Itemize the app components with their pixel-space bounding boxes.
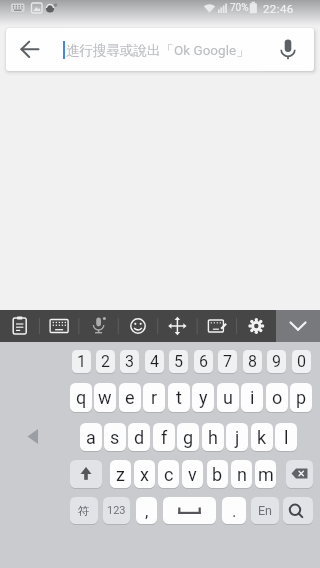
staticText: q <box>76 387 87 408</box>
staticText: 4 <box>150 352 159 371</box>
button[interactable]: r <box>143 383 165 412</box>
button[interactable] <box>283 497 313 524</box>
button[interactable]: y <box>192 383 214 412</box>
button[interactable] <box>79 310 118 342</box>
button[interactable] <box>10 30 50 68</box>
staticText: 0 <box>297 352 306 371</box>
staticText: u <box>223 387 233 408</box>
staticText: l <box>284 427 289 448</box>
staticText: i <box>250 387 255 408</box>
button[interactable]: 9 <box>267 350 286 373</box>
button[interactable]: 2 <box>96 350 115 373</box>
button[interactable] <box>158 310 197 342</box>
staticText: 5 <box>174 352 183 371</box>
staticText: c <box>164 464 174 485</box>
button[interactable]: 0 <box>292 350 311 373</box>
staticText: 2 <box>101 352 110 371</box>
staticText: w <box>98 387 112 408</box>
button[interactable]: s <box>104 423 126 451</box>
button[interactable]: 5 <box>169 350 188 373</box>
staticText: x <box>140 464 149 485</box>
button[interactable] <box>163 497 216 524</box>
staticText: 8 <box>248 352 257 371</box>
button[interactable] <box>276 310 320 342</box>
staticText: m <box>258 464 274 485</box>
button[interactable]: 7 <box>218 350 237 373</box>
staticText: e <box>125 387 135 408</box>
staticText: 123 <box>107 504 126 517</box>
button[interactable] <box>118 310 157 342</box>
button[interactable] <box>197 310 236 342</box>
staticText: n <box>237 464 247 485</box>
button[interactable]: o <box>266 383 288 412</box>
button[interactable] <box>70 460 102 488</box>
button[interactable]: 符 <box>70 497 98 524</box>
button[interactable]: k <box>251 423 273 451</box>
staticText: 符 <box>78 504 90 518</box>
staticText: z <box>116 464 125 485</box>
staticText: y <box>199 387 208 408</box>
button[interactable]: l <box>275 423 297 451</box>
button[interactable]: h <box>202 423 224 451</box>
staticText: . <box>232 501 237 521</box>
staticText: r <box>151 387 158 408</box>
button[interactable]: c <box>158 460 179 488</box>
button[interactable]: z <box>110 460 131 488</box>
button[interactable]: 3 <box>120 350 139 373</box>
button[interactable]: j <box>226 423 248 451</box>
staticText: g <box>183 427 194 448</box>
button[interactable]: p <box>290 383 312 412</box>
button[interactable]: . <box>222 497 246 524</box>
staticText: 進行搜尋或說出「Ok Google」 <box>66 42 250 59</box>
staticText: p <box>296 387 307 408</box>
staticText: 7 <box>223 352 232 371</box>
button[interactable]: g <box>177 423 199 451</box>
staticText: 6 <box>199 352 208 371</box>
staticText: s <box>110 427 120 448</box>
staticText: d <box>134 427 145 448</box>
button[interactable]: 123 <box>103 497 130 524</box>
button[interactable]: f <box>153 423 175 451</box>
staticText: En <box>258 503 273 518</box>
button[interactable]: q <box>70 383 92 412</box>
button[interactable]: 6 <box>194 350 213 373</box>
button[interactable]: a <box>80 423 102 451</box>
button[interactable]: m <box>255 460 276 488</box>
staticText: a <box>86 427 96 448</box>
button[interactable] <box>270 30 310 68</box>
button[interactable]: v <box>182 460 203 488</box>
staticText: 9 <box>272 352 281 371</box>
button[interactable] <box>39 310 78 342</box>
staticText: 1 <box>77 352 86 371</box>
staticText: v <box>188 464 197 485</box>
button[interactable]: , <box>136 497 157 524</box>
button[interactable] <box>0 310 39 342</box>
staticText: k <box>257 427 267 448</box>
button[interactable]: 8 <box>243 350 262 373</box>
staticText: 22:46 <box>263 2 294 15</box>
button[interactable]: d <box>128 423 150 451</box>
button[interactable]: t <box>168 383 190 412</box>
staticText: t <box>176 387 182 408</box>
staticText: , <box>145 501 149 521</box>
staticText: h <box>208 427 218 448</box>
button[interactable]: 1 <box>72 350 91 373</box>
staticText: f <box>161 427 168 448</box>
button[interactable]: En <box>251 497 279 524</box>
staticText: 3 <box>125 352 134 371</box>
button[interactable] <box>286 460 313 488</box>
button[interactable]: e <box>119 383 141 412</box>
button[interactable]: i <box>241 383 263 412</box>
button[interactable]: n <box>231 460 252 488</box>
staticText: b <box>212 464 223 485</box>
staticText: j <box>235 427 240 448</box>
button[interactable]: x <box>134 460 155 488</box>
staticText: 70% <box>230 2 249 14</box>
staticText: o <box>272 387 283 408</box>
button[interactable]: w <box>94 383 116 412</box>
button[interactable] <box>237 310 276 342</box>
button[interactable]: u <box>217 383 239 412</box>
button[interactable]: b <box>207 460 228 488</box>
button[interactable]: 4 <box>145 350 164 373</box>
